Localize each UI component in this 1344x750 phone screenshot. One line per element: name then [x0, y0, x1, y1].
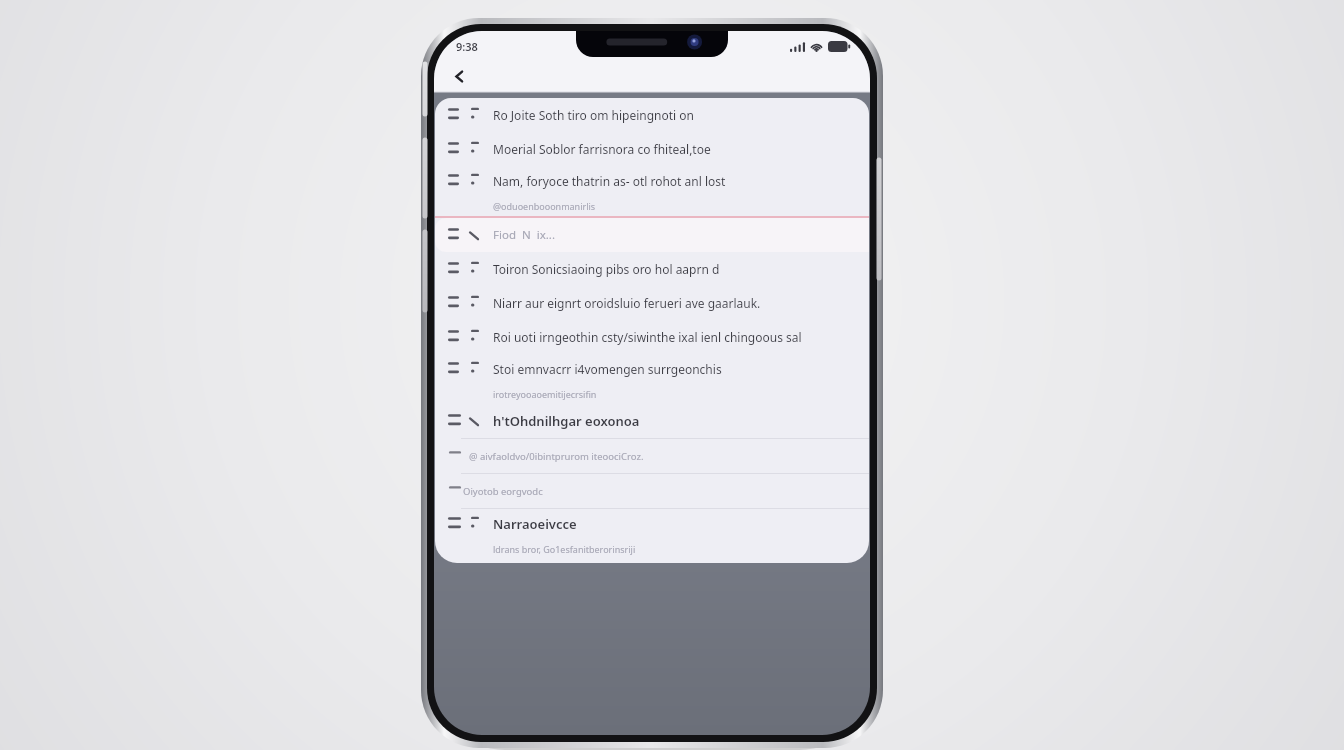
staticText: Narraoeivcce	[493, 515, 577, 533]
button[interactable]: h'tOhdnilhgar eoxonoa	[435, 404, 869, 438]
staticText: Toiron Sonicsiaoing pibs oro hol aaprn d	[493, 261, 720, 277]
staticText: ldrans bror, Go1esfanitberorinsriji	[493, 543, 636, 555]
button[interactable]: Narraoeivcce	[435, 509, 869, 559]
staticText: Moerial Soblor farrisnora co fhiteal,toe	[493, 141, 711, 157]
staticText: Niarr aur eignrt oroidsluio ferueri ave …	[493, 295, 761, 311]
button[interactable]: Back	[442, 61, 476, 92]
button[interactable]: Moerial Soblor farrisnora co fhiteal,toe	[435, 132, 869, 166]
button[interactable]: Roi uoti irngeothin csty/siwinthe ixal i…	[435, 320, 869, 354]
staticText: Roi uoti irngeothin csty/siwinthe ixal i…	[493, 329, 802, 345]
staticText: h'tOhdnilhgar eoxonoa	[493, 412, 640, 430]
staticText: irotreyooaoemitijecrsifin	[493, 388, 597, 400]
staticText: @ aivfaoldvo/0ibintprurom iteoociCroz.	[469, 450, 644, 463]
button[interactable]: Nam, foryoce thatrin as- otl rohot anl l…	[435, 166, 869, 216]
button[interactable]: Ro Joite Soth tiro om hipeingnoti on	[435, 98, 869, 132]
staticText: Fiod N ix...	[493, 227, 555, 243]
staticText: 9:38	[456, 39, 478, 54]
button[interactable]: Fiod N ix...	[435, 218, 869, 252]
button[interactable]: Toiron Sonicsiaoing pibs oro hol aaprn d	[435, 252, 869, 286]
staticText: Ro Joite Soth tiro om hipeingnoti on	[493, 107, 694, 123]
staticText: @oduoenbooonmanirlis	[493, 200, 596, 212]
button[interactable]: @ aivfaoldvo/0ibintprurom iteoociCroz.	[435, 439, 869, 473]
staticText: Oiyotob eorgvodc	[463, 485, 543, 498]
button[interactable]: Stoi emnvacrr i4vomengen surrgeonchis	[435, 354, 869, 404]
staticText: Nam, foryoce thatrin as- otl rohot anl l…	[493, 173, 726, 189]
button[interactable]: Niarr aur eignrt oroidsluio ferueri ave …	[435, 286, 869, 320]
staticText: Stoi emnvacrr i4vomengen surrgeonchis	[493, 361, 722, 377]
button[interactable]: Oiyotob eorgvodc	[435, 474, 869, 508]
